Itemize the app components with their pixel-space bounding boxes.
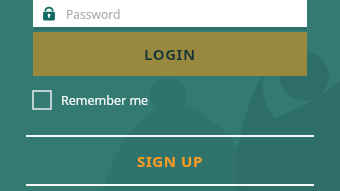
- button[interactable]: SIGN UP: [26, 137, 314, 184]
- staticText: SIGN UP: [137, 151, 203, 171]
- staticText: LOGIN: [144, 44, 196, 64]
- button[interactable]: Remember me: [33, 86, 149, 114]
- button[interactable]: Password: [33, 0, 307, 27]
- staticText: Remember me: [61, 92, 149, 109]
- staticText: Password: [66, 6, 121, 22]
- other: Password: [41, 6, 57, 22]
- button[interactable]: LOGIN: [33, 32, 307, 76]
